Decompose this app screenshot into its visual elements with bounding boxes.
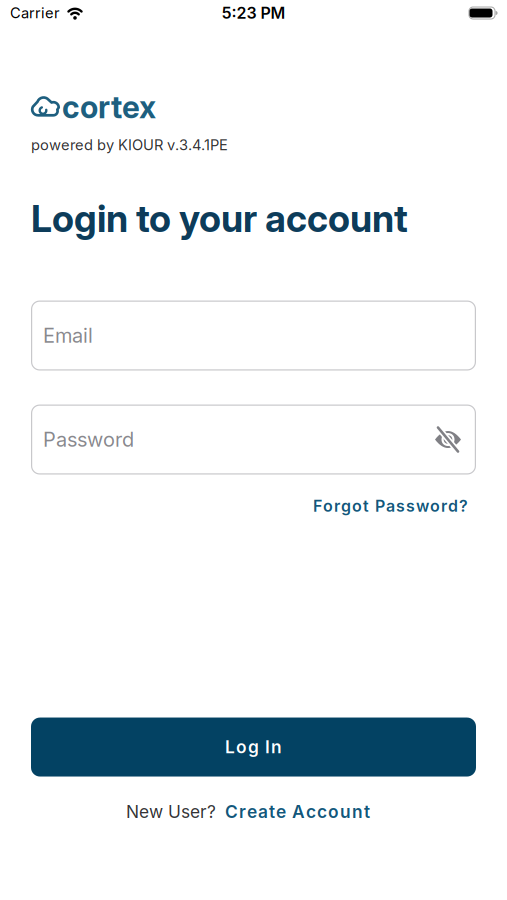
staticText: 5:23 PM <box>221 4 285 22</box>
staticText: C r e a t e A c c o u n t <box>225 802 370 822</box>
button[interactable]: Show password <box>434 425 462 453</box>
staticText: Password <box>43 428 134 451</box>
staticText: powered by KIOUR v.3.4.1PE <box>31 136 228 153</box>
button[interactable]: C r e a t e A c c o u n t <box>225 802 370 822</box>
staticText: cortex <box>62 89 156 125</box>
button[interactable]: L o g I n <box>31 718 476 777</box>
staticText: New User? <box>126 802 216 822</box>
staticText: Login to your account <box>31 196 408 240</box>
button[interactable]: F o r g o t P a s s w o r d ? <box>313 496 468 515</box>
staticText: L o g I n <box>225 737 282 757</box>
staticText: Carrier <box>10 4 60 22</box>
staticText: Email <box>43 324 93 347</box>
staticText: F o r g o t P a s s w o r d ? <box>313 496 468 515</box>
